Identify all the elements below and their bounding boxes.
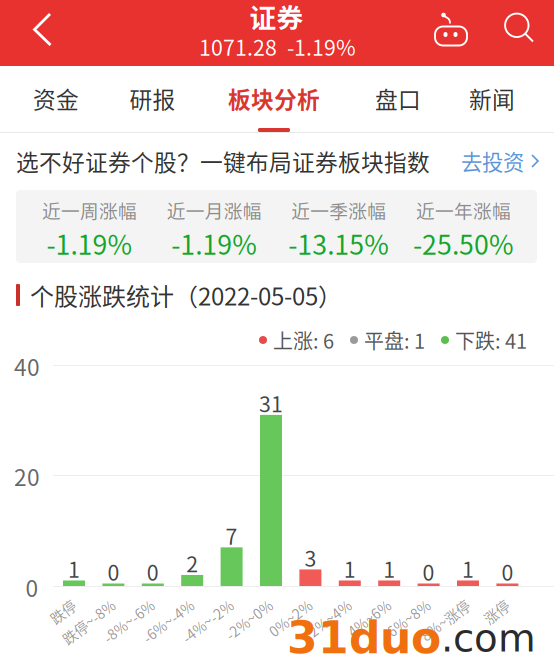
staticText: 证券 — [249, 0, 303, 35]
staticText: 研报 — [129, 82, 175, 115]
button[interactable]: 资金 — [8, 66, 104, 132]
staticText: 0%~2% — [260, 593, 310, 613]
staticText: 31 — [259, 387, 283, 418]
staticText: 跌停 — [46, 593, 74, 613]
staticText: -13.15% — [288, 224, 389, 262]
staticText: 资金 — [33, 82, 79, 115]
staticText: 0 — [423, 556, 435, 587]
staticText: 新闻 — [469, 82, 515, 115]
button[interactable]: 新闻 — [444, 66, 540, 132]
button[interactable]: Back — [15, 0, 71, 62]
staticText: 6%~8% — [379, 593, 429, 613]
staticText: 20 — [14, 460, 40, 492]
staticText: 3 — [304, 542, 316, 573]
staticText: 下跌: 41 — [455, 325, 527, 354]
staticText: -25.50% — [413, 224, 514, 262]
staticText: 1 — [344, 553, 356, 584]
staticText: 去投资 — [461, 146, 524, 176]
staticText: 1 — [462, 553, 474, 584]
staticText: 近一月涨幅 — [167, 197, 262, 224]
staticText: 选不好证券个股？一键布局证券板块指数 — [16, 145, 430, 177]
staticText: -1.19% — [171, 224, 257, 262]
staticText: 1071.28 -1.19% — [199, 31, 356, 62]
staticText: 个股涨跌统计（2022-05-05） — [30, 278, 342, 312]
staticText: 盘口 — [375, 82, 421, 115]
staticText: 2%~4% — [300, 593, 350, 613]
button[interactable]: 板块分析 — [226, 66, 322, 132]
staticText: 跌停~-8% — [51, 593, 113, 613]
button[interactable]: Assistant — [425, 0, 477, 63]
staticText: 0 — [147, 556, 159, 587]
button[interactable]: 盘口 — [350, 66, 446, 132]
staticText: 2 — [186, 547, 198, 578]
staticText: .com — [441, 615, 536, 656]
staticText: 近一季涨幅 — [291, 197, 386, 224]
staticText: 0 — [107, 556, 119, 587]
staticText: -1.19% — [46, 224, 132, 262]
staticText: 1 — [383, 553, 395, 584]
staticText: -2%~0% — [216, 593, 271, 613]
button[interactable]: 研报 — [104, 66, 200, 132]
button[interactable]: Search — [494, 0, 546, 61]
staticText: 板块分析 — [228, 82, 320, 115]
staticText: 0 — [501, 556, 513, 587]
staticText: 近一周涨幅 — [42, 197, 137, 224]
staticText: 上涨: 6 — [273, 325, 334, 354]
button[interactable]: 选不好证券个股？一键布局证券板块指数 — [0, 132, 554, 189]
staticText: 1 — [68, 553, 80, 584]
staticText: 0 — [25, 571, 38, 603]
staticText: 平盘: 1 — [364, 325, 425, 354]
staticText: 涨停 — [479, 593, 507, 613]
staticText: -4%~-2% — [172, 593, 232, 613]
staticText: 近一年涨幅 — [416, 197, 511, 224]
staticText: -8%~-6% — [93, 593, 153, 613]
staticText: 7 — [226, 520, 238, 551]
staticText: -6%~-4% — [132, 593, 192, 613]
staticText: 4%~6% — [339, 593, 389, 613]
staticText: 31duo — [287, 612, 441, 656]
staticText: 8%~涨停 — [411, 593, 468, 613]
staticText: 40 — [14, 350, 40, 382]
